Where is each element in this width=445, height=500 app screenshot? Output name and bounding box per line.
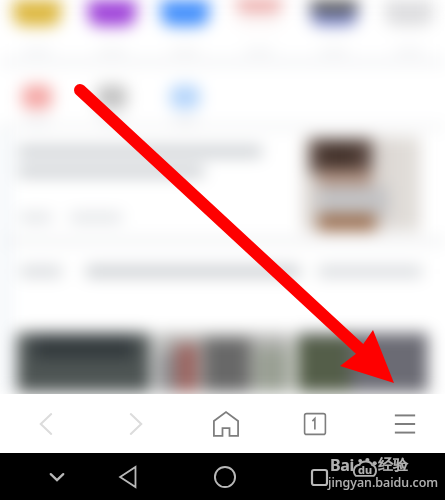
button[interactable]: Hide keyboard [21,453,93,500]
button[interactable]: Menu [361,394,445,453]
button[interactable]: Tabs [271,394,359,453]
staticText: Bai [330,454,354,476]
staticText: du [358,462,373,477]
button[interactable]: Recents [311,469,328,486]
button[interactable]: Home [182,394,270,453]
button[interactable]: Home [189,453,261,500]
button[interactable]: Back [93,453,165,500]
button[interactable]: Back [2,394,90,453]
staticText: jingyan.baidu.com [328,474,439,491]
button[interactable]: Forward [92,394,180,453]
staticText: 经验 [378,456,408,475]
